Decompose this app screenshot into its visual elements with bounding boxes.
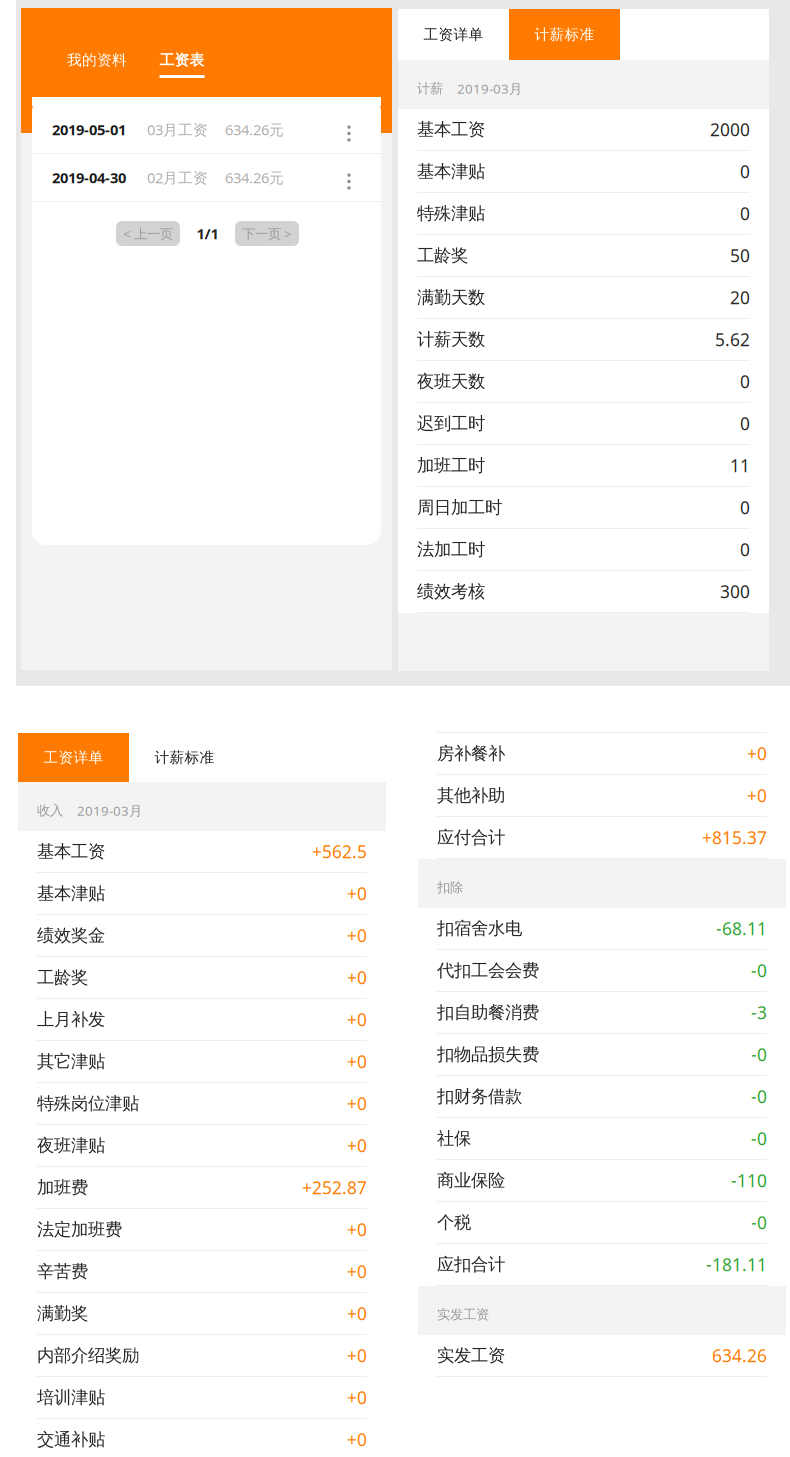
button[interactable]: 其它津贴 [18,1041,386,1083]
button[interactable]: 计薪标准 [509,9,620,60]
button[interactable]: 基本工资 [398,109,769,151]
staticText: 商业保险 [437,1170,505,1191]
staticText: 个税 [437,1212,471,1233]
button[interactable]: 我的资料 [66,45,128,75]
button[interactable]: 基本津贴 [18,873,386,915]
staticText: 扣宿舍水电 [437,918,522,939]
button[interactable]: 房补餐补 [418,733,786,775]
staticText: +0 [347,1050,367,1073]
staticText: +815.37 [702,826,767,849]
button[interactable]: 绩效奖金 [18,915,386,957]
staticText: 计薪 [417,80,443,97]
button[interactable]: 工资表 [159,45,205,78]
staticText: 基本津贴 [417,161,485,182]
staticText: 房补餐补 [437,743,505,764]
staticText: 培训津贴 [37,1387,105,1408]
button[interactable]: 夜班天数 [398,361,769,403]
staticText: 5.62 [715,328,750,351]
button[interactable]: 交通补贴 [18,1419,386,1457]
button[interactable]: 个税 [418,1202,786,1244]
staticText: 0 [740,496,750,519]
staticText: 周日加工时 [417,497,502,518]
staticText: +0 [347,1428,367,1451]
staticText: 其它津贴 [37,1051,105,1072]
button[interactable]: 工资详单 [18,733,129,782]
button[interactable]: 代扣工会会费 [418,950,786,992]
staticText: +0 [347,1344,367,1367]
button[interactable]: 计薪天数 [398,319,769,361]
button[interactable]: 满勤天数 [398,277,769,319]
staticText: 社保 [437,1128,471,1149]
button[interactable]: < 上一页 [116,221,180,246]
button[interactable]: 迟到工时 [398,403,769,445]
staticText: 迟到工时 [417,413,485,434]
staticText: 其他补助 [437,785,505,806]
staticText: 工资详单 [43,748,103,766]
staticText: +0 [347,1134,367,1157]
staticText: 11 [730,454,750,477]
button[interactable]: 扣物品损失费 [418,1034,786,1076]
button[interactable]: More options [339,110,359,148]
button[interactable]: 绩效考核 [398,571,769,613]
staticText: 辛苦费 [37,1261,88,1282]
button[interactable]: 应付合计 [418,817,786,859]
button[interactable]: 2019-04-30 [32,154,381,202]
button[interactable]: 2019-05-01 [32,106,381,154]
staticText: 0 [740,370,750,393]
staticText: -0 [751,1211,767,1234]
staticText: +0 [347,1218,367,1241]
staticText: 50 [730,244,750,267]
staticText: 法定加班费 [37,1219,122,1240]
button[interactable]: 应扣合计 [418,1244,786,1286]
staticText: +562.5 [312,840,367,863]
button[interactable]: 法定加班费 [18,1209,386,1251]
button[interactable]: 加班费 [18,1167,386,1209]
staticText: 交通补贴 [37,1429,105,1450]
staticText: 特殊岗位津贴 [37,1093,139,1114]
button[interactable]: 基本津贴 [398,151,769,193]
button[interactable]: 商业保险 [418,1160,786,1202]
button[interactable]: 下一页 > [235,221,299,246]
button[interactable]: 上月补发 [18,999,386,1041]
staticText: 代扣工会会费 [437,960,539,981]
button[interactable]: 加班工时 [398,445,769,487]
button[interactable]: 基本工资 [18,831,386,873]
button[interactable]: 实发工资 [418,1335,786,1377]
button[interactable]: More options [339,158,359,196]
staticText: 扣除 [437,879,463,896]
button[interactable]: 工资详单 [398,9,509,60]
button[interactable]: 扣宿舍水电 [418,908,786,950]
staticText: +0 [347,966,367,989]
button[interactable]: 满勤奖 [18,1293,386,1335]
staticText: 2019-03月 [77,802,142,819]
staticText: 法加工时 [417,539,485,560]
staticText: 上月补发 [37,1009,105,1030]
button[interactable]: 工龄奖 [398,235,769,277]
staticText: -181.11 [706,1253,767,1276]
button[interactable]: 特殊岗位津贴 [18,1083,386,1125]
button[interactable]: 计薪标准 [129,733,240,782]
button[interactable]: 工龄奖 [18,957,386,999]
staticText: 扣财务借款 [437,1086,522,1107]
staticText: 工资详单 [423,25,483,43]
staticText: 1/1 [196,224,218,243]
button[interactable]: 法加工时 [398,529,769,571]
button[interactable]: 特殊津贴 [398,193,769,235]
staticText: -68.11 [716,917,767,940]
button[interactable]: 夜班津贴 [18,1125,386,1167]
staticText: 下一页 > [242,225,292,242]
staticText: -0 [751,1085,767,1108]
button[interactable]: 培训津贴 [18,1377,386,1419]
button[interactable]: 扣财务借款 [418,1076,786,1118]
button[interactable]: 内部介绍奖励 [18,1335,386,1377]
staticText: 内部介绍奖励 [37,1345,139,1366]
button[interactable]: 其他补助 [418,775,786,817]
staticText: 634.26 [712,1344,767,1367]
staticText: 应扣合计 [437,1254,505,1275]
staticText: 实发工资 [437,1345,505,1366]
button[interactable]: 扣自助餐消费 [418,992,786,1034]
button[interactable]: 社保 [418,1118,786,1160]
button[interactable]: 周日加工时 [398,487,769,529]
staticText: +0 [347,1008,367,1031]
button[interactable]: 辛苦费 [18,1251,386,1293]
